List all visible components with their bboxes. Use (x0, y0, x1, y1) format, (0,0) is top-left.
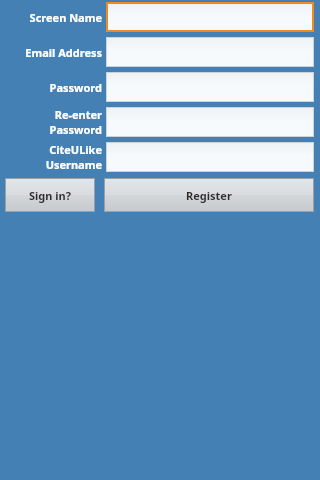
button[interactable] (106, 2, 314, 32)
button[interactable] (106, 142, 314, 172)
staticText: CiteULike Username (0, 142, 102, 172)
button[interactable] (106, 37, 314, 67)
button[interactable]: Register (104, 178, 314, 212)
staticText: Password (49, 80, 102, 95)
button[interactable] (106, 107, 314, 137)
button[interactable]: Sign in? (5, 178, 95, 212)
staticText: Register (186, 188, 232, 203)
staticText: Sign in? (29, 188, 71, 203)
button[interactable] (106, 72, 314, 102)
staticText: Re-enter Password (0, 107, 102, 137)
staticText: Screen Name (29, 10, 102, 25)
staticText: Email Address (25, 45, 102, 60)
